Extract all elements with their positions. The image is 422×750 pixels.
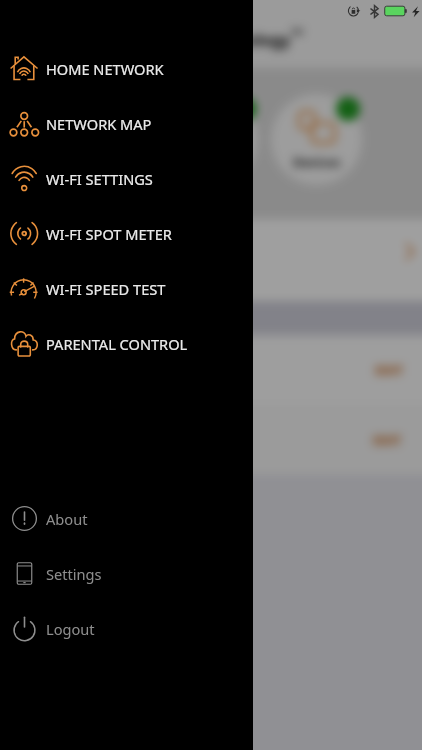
- button[interactable]: WI-FI SPOT METER: [0, 206, 253, 261]
- staticText: WI-FI SPOT METER: [46, 224, 172, 244]
- button[interactable]: NETWORK MAP: [0, 96, 253, 151]
- staticText: PARENTAL CONTROL: [46, 334, 188, 354]
- staticText: Devices: [293, 154, 341, 171]
- button[interactable]: Settings: [0, 546, 253, 601]
- button[interactable]: WI-FI SPEED TEST: [0, 261, 253, 316]
- button[interactable]: PARENTAL CONTROL: [0, 316, 253, 371]
- staticText: EDIT: [373, 432, 402, 449]
- staticText: my technology: [172, 29, 291, 51]
- button[interactable]: About: [0, 491, 253, 546]
- button[interactable]: HOME NETWORK: [0, 41, 253, 96]
- staticText: WI-FI SETTINGS: [46, 169, 153, 189]
- staticText: EDIT: [375, 362, 404, 379]
- staticText: HOME NETWORK: [46, 59, 164, 79]
- button[interactable]: WI-FI SETTINGS: [0, 151, 253, 206]
- staticText: Settings: [46, 564, 102, 584]
- staticText: WI-FI SPEED TEST: [46, 279, 166, 299]
- staticText: Logout: [46, 619, 95, 639]
- staticText: About: [46, 509, 88, 529]
- button[interactable]: Logout: [0, 601, 253, 656]
- staticText: TM: [291, 26, 304, 37]
- staticText: NETWORK MAP: [46, 114, 152, 134]
